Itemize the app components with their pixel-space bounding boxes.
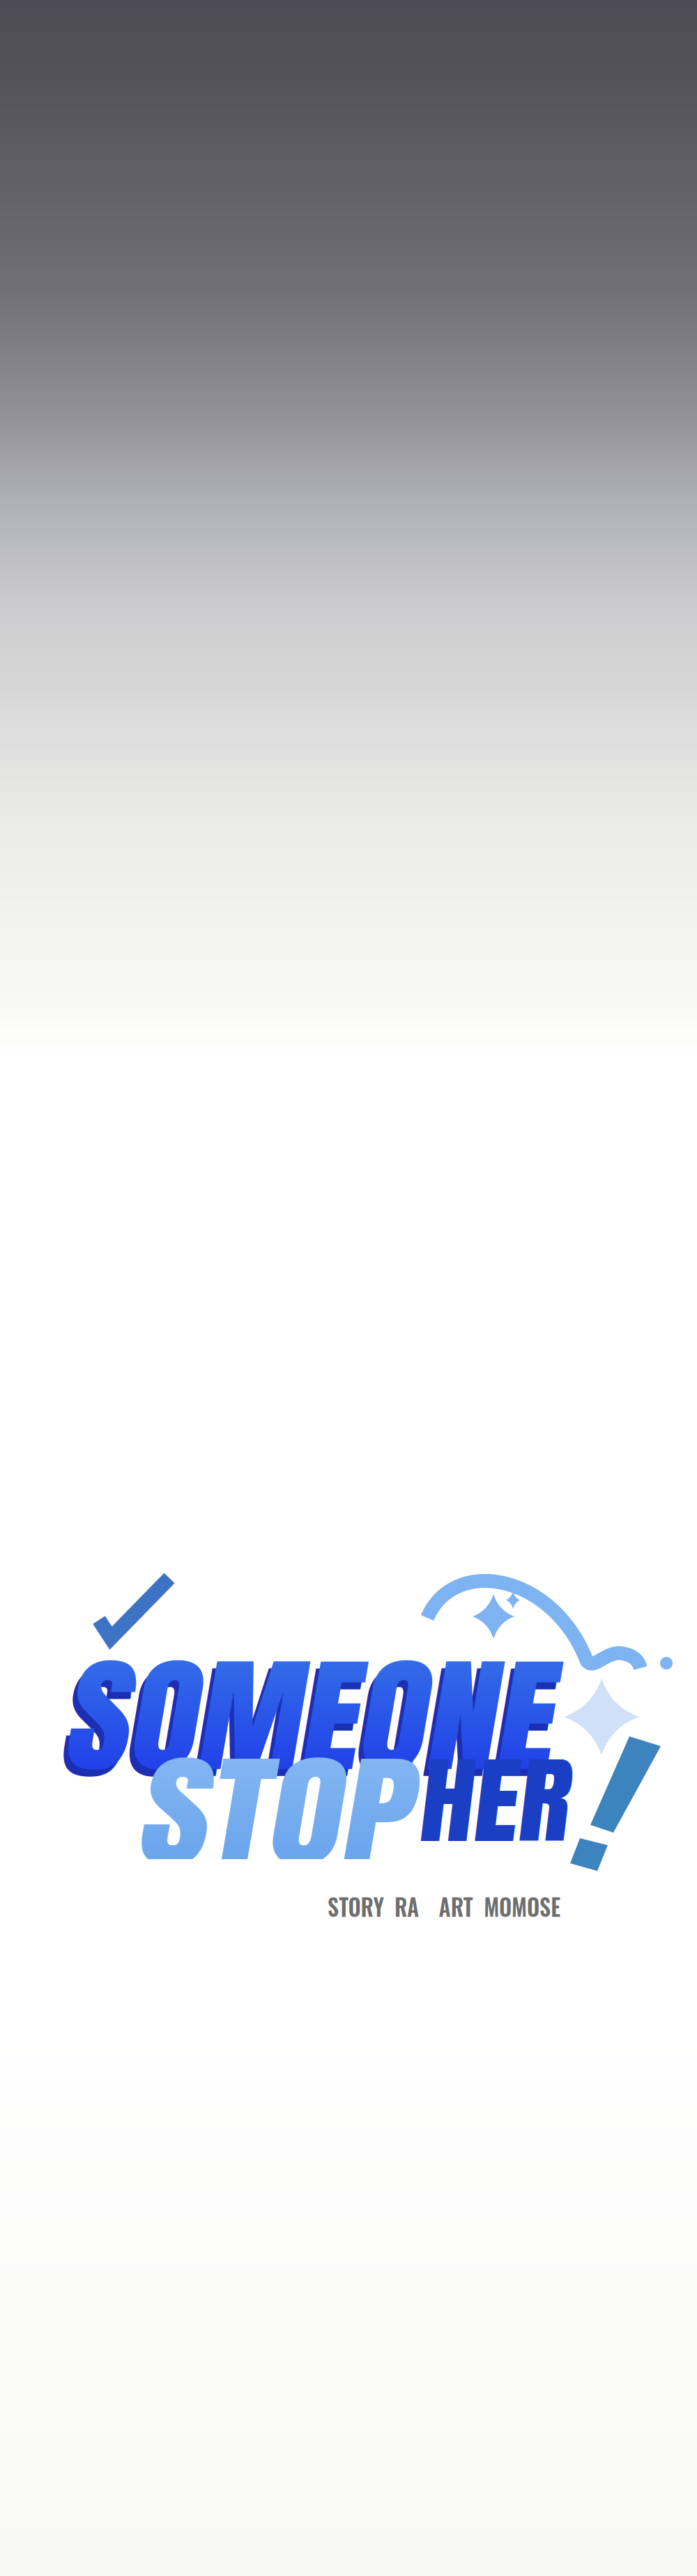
staticText: STORY RA	[328, 1889, 424, 1924]
staticText: SOMEONE	[30, 1628, 470, 1817]
staticText: HER	[395, 1729, 527, 1872]
staticText: ART MOMOSE	[445, 1889, 573, 1924]
